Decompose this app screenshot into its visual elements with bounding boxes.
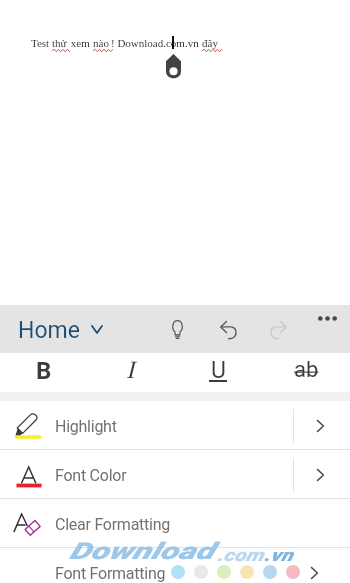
button[interactable]: Undo	[203, 305, 250, 353]
staticText: Highlight	[55, 417, 117, 436]
button[interactable]: More options	[302, 305, 350, 353]
button[interactable]: U	[174, 353, 262, 392]
staticText: Clear Formatting	[55, 515, 171, 534]
staticText: đây	[202, 37, 218, 49]
staticText: U	[211, 357, 226, 384]
staticText: Test	[31, 37, 52, 49]
button[interactable]: Redo	[250, 305, 300, 353]
button[interactable]: Tell me what you want to do	[153, 305, 203, 353]
staticText: .vn	[264, 545, 293, 565]
button[interactable]: I	[87, 353, 174, 392]
button[interactable]: B	[0, 353, 87, 392]
button[interactable]: Clear Formatting	[0, 499, 350, 547]
staticText: ! Download.com.vn	[111, 37, 202, 49]
button[interactable]: Font Color	[0, 450, 350, 498]
button[interactable]: Font Formatting	[0, 548, 350, 583]
staticText: xem	[68, 37, 93, 49]
button[interactable]: Highlight	[0, 401, 350, 449]
staticText: nào	[93, 37, 109, 49]
staticText: Font Formatting	[55, 564, 166, 583]
staticText: I	[126, 356, 135, 384]
staticText: .com	[217, 545, 264, 565]
staticText: Font Color	[55, 466, 127, 485]
staticText: B	[36, 357, 52, 385]
staticText: Home	[18, 317, 80, 344]
staticText: thử	[52, 37, 67, 49]
button[interactable]: ab	[262, 353, 350, 392]
staticText: Download	[69, 538, 213, 565]
staticText: ab	[294, 357, 319, 383]
button[interactable]: Home	[0, 305, 116, 353]
